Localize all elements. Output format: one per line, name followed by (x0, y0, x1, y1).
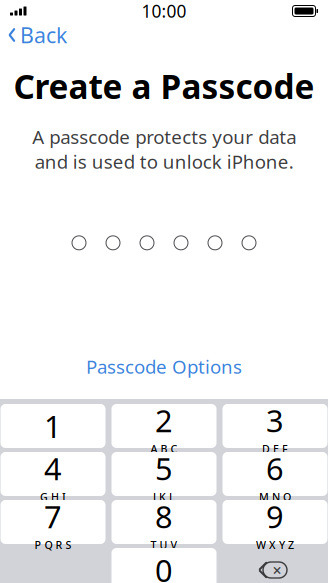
staticText: M N O (259, 490, 291, 504)
staticText: Back (20, 21, 67, 49)
staticText: A passcode protects your data and is use… (32, 124, 296, 174)
staticText: 9 (266, 496, 284, 537)
staticText: 6 (266, 448, 284, 489)
staticText: T U V (150, 538, 177, 552)
staticText: W X Y Z (256, 538, 294, 552)
staticText: P Q R S (34, 538, 71, 552)
staticText: 8 (155, 496, 173, 537)
button[interactable]: 2 (111, 404, 216, 448)
staticText: Create a Passcode (13, 64, 314, 108)
staticText: 1 (44, 406, 62, 446)
staticText: A B C (150, 442, 177, 456)
staticText: D E F (262, 442, 288, 456)
staticText: Passcode Options (86, 354, 242, 379)
button[interactable]: 4 (0, 452, 105, 496)
staticText: × (272, 559, 281, 581)
button[interactable]: 6 (222, 452, 327, 496)
staticText: 4 (44, 448, 62, 489)
staticText: 10:00 (141, 0, 186, 22)
staticText: G H I (40, 490, 66, 504)
staticText: J K L (153, 490, 175, 504)
button[interactable]: 5 (111, 452, 216, 496)
button[interactable]: Passcode Options (74, 349, 254, 384)
staticText: 2 (155, 400, 173, 441)
button[interactable]: 0 (111, 548, 216, 583)
button[interactable]: 3 (222, 404, 327, 448)
button[interactable]: Delete (222, 548, 327, 583)
staticText: 5 (155, 448, 173, 489)
button[interactable]: Back (0, 17, 67, 53)
button[interactable]: 1 (0, 404, 105, 448)
button[interactable]: 7 (0, 500, 105, 544)
staticText: 3 (266, 400, 284, 441)
button[interactable]: 8 (111, 500, 216, 544)
staticText: 0 (155, 550, 173, 583)
staticText: 7 (44, 496, 62, 537)
button[interactable]: 9 (222, 500, 327, 544)
